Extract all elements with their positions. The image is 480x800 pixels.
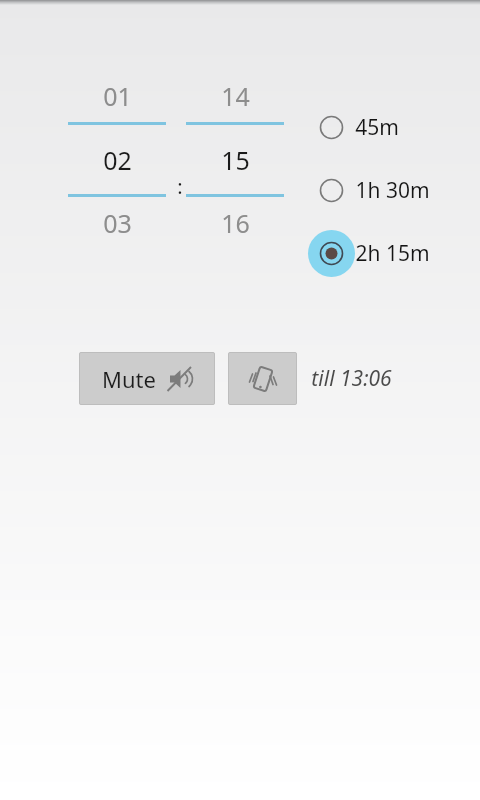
staticText: 1h 30m (355, 176, 430, 205)
button[interactable]: 2h 15m (308, 230, 430, 277)
staticText: 01 (103, 79, 132, 113)
staticText: 14 (221, 79, 250, 113)
staticText: 45m (355, 113, 399, 142)
staticText: : (177, 173, 183, 200)
button[interactable]: Minutes (186, 70, 284, 249)
button[interactable]: 45m (308, 104, 399, 151)
button[interactable]: Hours (68, 70, 166, 249)
button[interactable]: Mute (79, 352, 215, 405)
button[interactable]: 1h 30m (308, 167, 430, 214)
staticText: 16 (221, 206, 250, 240)
staticText: till 13:06 (311, 364, 392, 393)
staticText: 02 (103, 143, 132, 177)
staticText: Mute (102, 364, 156, 394)
button[interactable]: Vibrate (228, 352, 297, 405)
staticText: 03 (103, 206, 132, 240)
staticText: 15 (221, 143, 250, 177)
staticText: 2h 15m (355, 239, 430, 268)
